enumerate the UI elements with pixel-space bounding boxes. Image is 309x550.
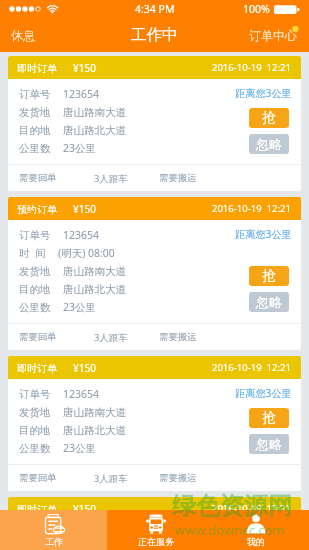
staticText: 目的地 xyxy=(19,283,51,296)
button[interactable]: 抢 xyxy=(249,266,289,286)
staticText: 抢 xyxy=(262,109,276,127)
button[interactable]: 我的 xyxy=(208,510,309,550)
staticText: 即时订单 xyxy=(17,62,57,75)
staticText: 公里数 xyxy=(19,442,51,455)
button[interactable]: 订单中心 xyxy=(239,18,309,52)
staticText: 123654 xyxy=(63,228,100,242)
staticText: ¥150 xyxy=(73,361,96,375)
button[interactable]: 即时订单 xyxy=(8,56,301,191)
staticText: 2016-10-19 12:21 xyxy=(212,202,291,215)
staticText: 唐山路南大道 xyxy=(63,265,126,278)
staticText: 123654 xyxy=(63,87,100,101)
staticText: 订单号 xyxy=(19,529,51,542)
staticText: 距离您3公里 xyxy=(235,527,292,541)
staticText: 123654 xyxy=(63,387,100,401)
staticText: 即时订单 xyxy=(17,362,57,375)
staticText: 即时订单 xyxy=(17,503,57,516)
button[interactable]: 正在服务 xyxy=(107,510,208,550)
staticText: 订单号 xyxy=(19,388,51,401)
staticText: 4:34 PM xyxy=(135,2,175,16)
staticText: 3人跟车 xyxy=(94,331,128,344)
staticText: 时 间 xyxy=(19,246,46,260)
staticText: 预约订单 xyxy=(17,203,57,216)
staticText: 唐山路南大道 xyxy=(63,406,126,419)
staticText: 发货地 xyxy=(19,406,51,419)
staticText: 2016-10-19 12:21 xyxy=(212,61,291,74)
button[interactable]: 休息 xyxy=(0,18,46,52)
button[interactable]: 即时订单 xyxy=(8,497,301,550)
staticText: 需要搬运 xyxy=(159,472,197,484)
staticText: ¥150 xyxy=(73,61,96,75)
button[interactable]: 即时订单 xyxy=(8,356,301,491)
staticText: 123654 xyxy=(63,528,100,542)
staticText: 订单号 xyxy=(19,88,51,101)
staticText: 工作中 xyxy=(131,25,178,45)
staticText: ¥150 xyxy=(73,202,96,216)
button[interactable]: 工作 xyxy=(0,510,107,550)
staticText: 正在服务 xyxy=(138,536,174,547)
staticText: 公里数 xyxy=(19,142,51,155)
staticText: 忽略 xyxy=(256,436,282,452)
staticText: 需要搬运 xyxy=(159,172,197,184)
staticText: 我的 xyxy=(247,536,265,547)
staticText: 23公里 xyxy=(63,441,97,455)
staticText: 订单中心 xyxy=(249,28,297,43)
staticText: 唐山路南大道 xyxy=(63,544,126,550)
staticText: 需要回单 xyxy=(19,472,57,484)
staticText: 需要回单 xyxy=(19,331,57,343)
staticText: 唐山路北大道 xyxy=(63,283,126,296)
staticText: 距离您3公里 xyxy=(235,227,292,241)
staticText: 抢 xyxy=(262,267,276,285)
button[interactable]: 预约订单 xyxy=(8,197,301,350)
staticText: 发货地 xyxy=(19,106,51,119)
staticText: 3人跟车 xyxy=(94,172,128,185)
staticText: 2016-10-19 12:21 xyxy=(212,502,291,515)
staticText: 23公里 xyxy=(63,141,97,155)
button[interactable]: 忽略 xyxy=(249,134,289,154)
button[interactable]: 抢 xyxy=(249,408,289,428)
staticText: 目的地 xyxy=(19,424,51,437)
button[interactable]: 忽略 xyxy=(249,292,289,312)
button[interactable]: 忽略 xyxy=(249,434,289,454)
staticText: 发货地 xyxy=(19,265,51,278)
staticText: www.downcc.com xyxy=(175,521,285,539)
staticText: 距离您3公里 xyxy=(235,86,292,100)
staticText: 距离您3公里 xyxy=(235,386,292,400)
staticText: 23公里 xyxy=(63,300,97,314)
staticText: 唐山路北大道 xyxy=(63,424,126,437)
staticText: 需要回单 xyxy=(19,172,57,184)
staticText: 休息 xyxy=(11,28,35,43)
staticText: 抢 xyxy=(262,409,276,427)
staticText: 绿色资源网 xyxy=(172,491,292,521)
staticText: ¥150 xyxy=(73,502,96,516)
staticText: 忽略 xyxy=(256,294,282,310)
staticText: 需要搬运 xyxy=(159,331,197,343)
staticText: (明天) 08:00 xyxy=(58,246,115,260)
staticText: 忽略 xyxy=(256,136,282,152)
staticText: 目的地 xyxy=(19,124,51,137)
staticText: 100% xyxy=(243,2,270,16)
staticText: 公里数 xyxy=(19,301,51,314)
staticText: 工作 xyxy=(45,536,63,547)
button[interactable]: 抢 xyxy=(249,108,289,128)
staticText: 订单号 xyxy=(19,229,51,242)
staticText: 3人跟车 xyxy=(94,472,128,485)
staticText: 2016-10-19 12:21 xyxy=(212,361,291,374)
staticText: 发货地 xyxy=(19,544,51,550)
staticText: 唐山路北大道 xyxy=(63,124,126,137)
staticText: 唐山路南大道 xyxy=(63,106,126,119)
